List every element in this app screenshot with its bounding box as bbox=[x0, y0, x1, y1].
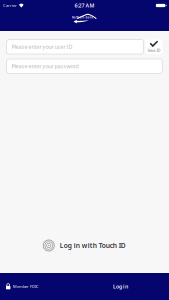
staticText: Log in bbox=[113, 283, 128, 290]
staticText: Please enter your password bbox=[12, 63, 79, 70]
button[interactable]: Log in bbox=[113, 283, 128, 290]
button[interactable]: Please enter your user ID bbox=[7, 39, 143, 54]
button[interactable]: Log in with Touch ID bbox=[43, 240, 126, 251]
staticText: Northern Bank bbox=[71, 16, 93, 19]
staticText: 6:27 AM bbox=[74, 2, 94, 9]
button[interactable]: Member FDIC bbox=[6, 284, 39, 289]
staticText: Save ID bbox=[147, 48, 160, 53]
staticText: Please enter your user ID bbox=[12, 43, 73, 50]
button[interactable]: Save ID bbox=[145, 39, 162, 54]
staticText: Member FDIC bbox=[13, 284, 39, 289]
staticText: Log in with Touch ID bbox=[60, 241, 126, 250]
staticText: Carrier bbox=[3, 3, 17, 8]
button[interactable]: Please enter your password bbox=[7, 59, 162, 73]
